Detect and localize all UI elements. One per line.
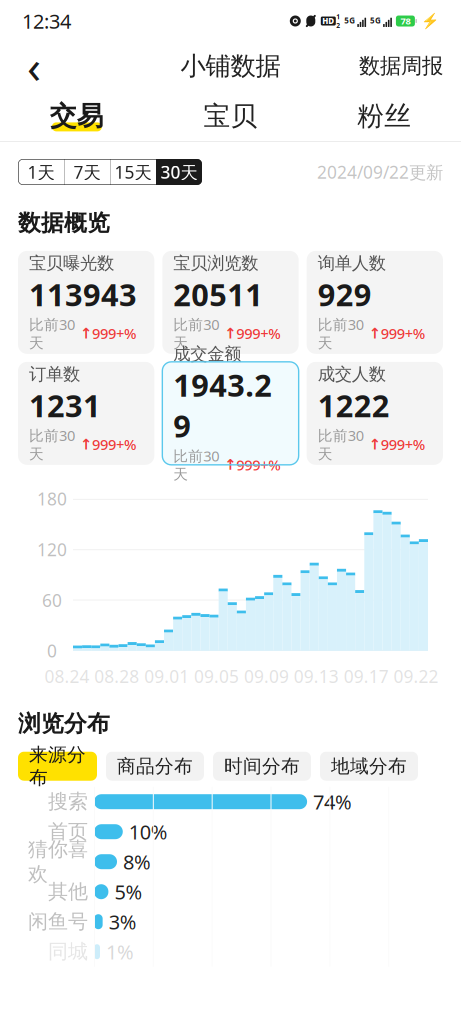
staticText: 2 bbox=[336, 21, 340, 30]
button[interactable]: 粉丝 bbox=[307, 90, 461, 142]
button[interactable]: 交易 bbox=[0, 90, 154, 142]
staticText: ↑ bbox=[364, 436, 381, 453]
staticText: ↑ bbox=[364, 325, 381, 342]
staticText: ⚡ bbox=[421, 13, 439, 29]
button[interactable]: 成交金额 bbox=[162, 362, 299, 465]
staticText: 08.24 bbox=[44, 665, 89, 688]
button[interactable]: Back bbox=[12, 44, 56, 88]
button[interactable]: 时间分布 bbox=[213, 752, 311, 781]
button[interactable]: 宝贝曝光数 bbox=[18, 251, 154, 354]
staticText: 1231 bbox=[29, 385, 101, 426]
staticText: 比前30天 bbox=[318, 315, 364, 352]
staticText: 比前30天 bbox=[173, 446, 219, 483]
staticText: 999+% bbox=[381, 435, 425, 454]
staticText: 成交人数 bbox=[318, 364, 386, 385]
button[interactable]: 地域分布 bbox=[320, 752, 418, 781]
staticText: 999+% bbox=[381, 324, 425, 343]
staticText: 5% bbox=[114, 878, 142, 905]
staticText: 比前30天 bbox=[29, 426, 75, 463]
button[interactable]: 数据周报 bbox=[353, 44, 449, 88]
staticText: 同城 bbox=[48, 939, 88, 964]
staticText: 999+% bbox=[92, 435, 136, 454]
staticText: 999+% bbox=[92, 324, 136, 343]
staticText: 09.22 bbox=[394, 665, 439, 688]
staticText: 比前30天 bbox=[318, 426, 364, 463]
staticText: HD bbox=[322, 16, 334, 26]
staticText: ‹ bbox=[27, 36, 41, 96]
staticText: 1943.29 bbox=[173, 364, 272, 446]
button[interactable]: 15天 bbox=[110, 159, 156, 185]
staticText: 60 bbox=[42, 589, 62, 612]
staticText: ↑ bbox=[219, 325, 236, 342]
staticText: 搜索 bbox=[48, 789, 88, 814]
staticText: 比前30天 bbox=[29, 315, 75, 352]
staticText: 08.28 bbox=[94, 665, 139, 688]
staticText: 其他 bbox=[48, 879, 88, 904]
staticText: 10% bbox=[129, 818, 168, 845]
staticText: 宝贝曝光数 bbox=[29, 253, 114, 274]
staticText: 30天 bbox=[160, 160, 197, 183]
staticText: 询单人数 bbox=[318, 253, 386, 274]
staticText: 交易 bbox=[50, 100, 104, 132]
staticText: 商品分布 bbox=[117, 755, 193, 778]
staticText: 宝贝浏览数 bbox=[173, 253, 258, 274]
button[interactable]: 宝贝浏览数 bbox=[162, 251, 299, 354]
staticText: 999+% bbox=[236, 455, 280, 474]
staticText: 1 bbox=[336, 12, 340, 21]
staticText: 2024/09/22更新 bbox=[317, 160, 443, 183]
staticText: 929 bbox=[318, 274, 372, 315]
staticText: 比前30天 bbox=[173, 315, 219, 352]
button[interactable]: 宝贝 bbox=[154, 90, 307, 142]
button[interactable]: 成交人数 bbox=[307, 362, 443, 465]
staticText: 09.17 bbox=[344, 665, 389, 688]
staticText: 订单数 bbox=[29, 364, 80, 385]
staticText: 猜你喜欢 bbox=[28, 837, 88, 886]
staticText: ↑ bbox=[219, 456, 236, 473]
staticText: ↑ bbox=[75, 325, 92, 342]
staticText: 地域分布 bbox=[331, 755, 407, 778]
staticText: 1222 bbox=[318, 385, 390, 426]
staticText: 1% bbox=[106, 938, 134, 965]
button[interactable]: 订单数 bbox=[18, 362, 154, 465]
staticText: 113943 bbox=[29, 274, 137, 315]
staticText: 999+% bbox=[236, 324, 280, 343]
staticText: 成交金额 bbox=[173, 343, 241, 364]
staticText: 09.13 bbox=[294, 665, 339, 688]
staticText: 20511 bbox=[173, 274, 263, 315]
staticText: 78 bbox=[400, 15, 410, 27]
button[interactable]: 商品分布 bbox=[106, 752, 204, 781]
staticText: 粉丝 bbox=[357, 100, 411, 132]
staticText: 时间分布 bbox=[224, 755, 300, 778]
button[interactable]: 来源分布 bbox=[18, 752, 97, 781]
staticText: 7天 bbox=[73, 160, 100, 183]
staticText: 0 bbox=[47, 639, 57, 662]
staticText: 5G bbox=[370, 15, 381, 26]
staticText: 浏览分布 bbox=[18, 710, 110, 738]
button[interactable]: 7天 bbox=[64, 159, 110, 185]
staticText: 3% bbox=[109, 908, 137, 935]
staticText: 15天 bbox=[114, 160, 151, 183]
staticText: 09.09 bbox=[244, 665, 289, 688]
staticText: 闲鱼号 bbox=[28, 909, 88, 934]
staticText: 小铺数据 bbox=[180, 50, 280, 81]
staticText: 首页 bbox=[48, 819, 88, 844]
staticText: 12:34 bbox=[22, 8, 71, 34]
staticText: 120 bbox=[37, 538, 67, 561]
button[interactable]: 30天 bbox=[156, 159, 202, 185]
staticText: 5G bbox=[344, 15, 355, 26]
staticText: 宝贝 bbox=[203, 100, 257, 132]
staticText: 180 bbox=[37, 487, 67, 510]
staticText: 数据周报 bbox=[359, 53, 443, 79]
staticText: 74% bbox=[313, 788, 352, 815]
staticText: 数据概览 bbox=[18, 209, 110, 237]
staticText: 1天 bbox=[27, 160, 54, 183]
staticText: 09.01 bbox=[144, 665, 189, 688]
button[interactable]: 询单人数 bbox=[307, 251, 443, 354]
button[interactable]: 1天 bbox=[18, 159, 64, 185]
staticText: ↑ bbox=[75, 436, 92, 453]
staticText: 09.05 bbox=[194, 665, 239, 688]
staticText: 8% bbox=[123, 848, 151, 875]
staticText: 来源分布 bbox=[29, 743, 86, 789]
